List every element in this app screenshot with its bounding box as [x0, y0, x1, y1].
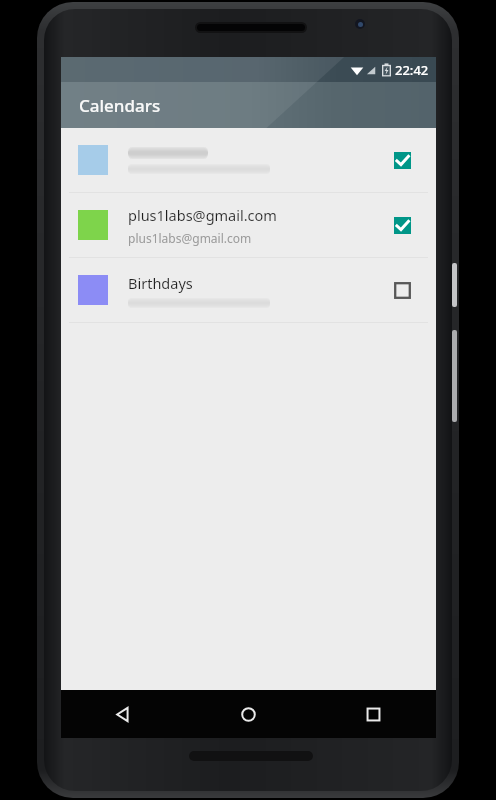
- staticText: Birthdays: [128, 273, 193, 293]
- button[interactable]: Back: [61, 690, 186, 738]
- button[interactable]: Calendar visible: [384, 142, 420, 178]
- button[interactable]: Calendar hidden: [384, 272, 420, 308]
- button[interactable]: Recent apps: [311, 690, 436, 738]
- staticText: Calendars: [79, 94, 161, 117]
- button[interactable]: Home: [186, 690, 311, 738]
- staticText: plus1labs@gmail.com: [128, 205, 277, 225]
- button[interactable]: Calendar visible: [384, 207, 420, 243]
- button[interactable]: plus1labs@gmail.com: [61, 193, 436, 257]
- button[interactable]: Birthdays: [61, 258, 436, 322]
- staticText: plus1labs@gmail.com: [128, 230, 252, 246]
- staticText: 22:42: [395, 61, 429, 79]
- button[interactable]: Calendar visible: [61, 128, 436, 192]
